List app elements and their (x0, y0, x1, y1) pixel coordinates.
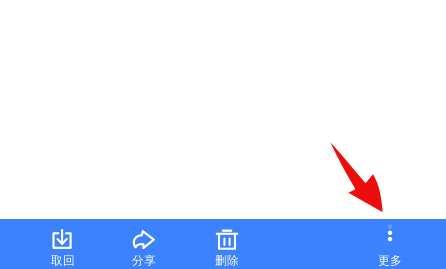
staticText: 分享 (132, 253, 156, 268)
staticText: 取回 (51, 253, 75, 268)
button[interactable]: 取回 (35, 219, 91, 269)
button[interactable]: 分享 (116, 219, 172, 269)
staticText: 删除 (215, 253, 239, 268)
button[interactable]: 删除 (199, 219, 255, 269)
staticText: 更多 (378, 253, 402, 268)
button[interactable]: 更多 (362, 219, 418, 269)
